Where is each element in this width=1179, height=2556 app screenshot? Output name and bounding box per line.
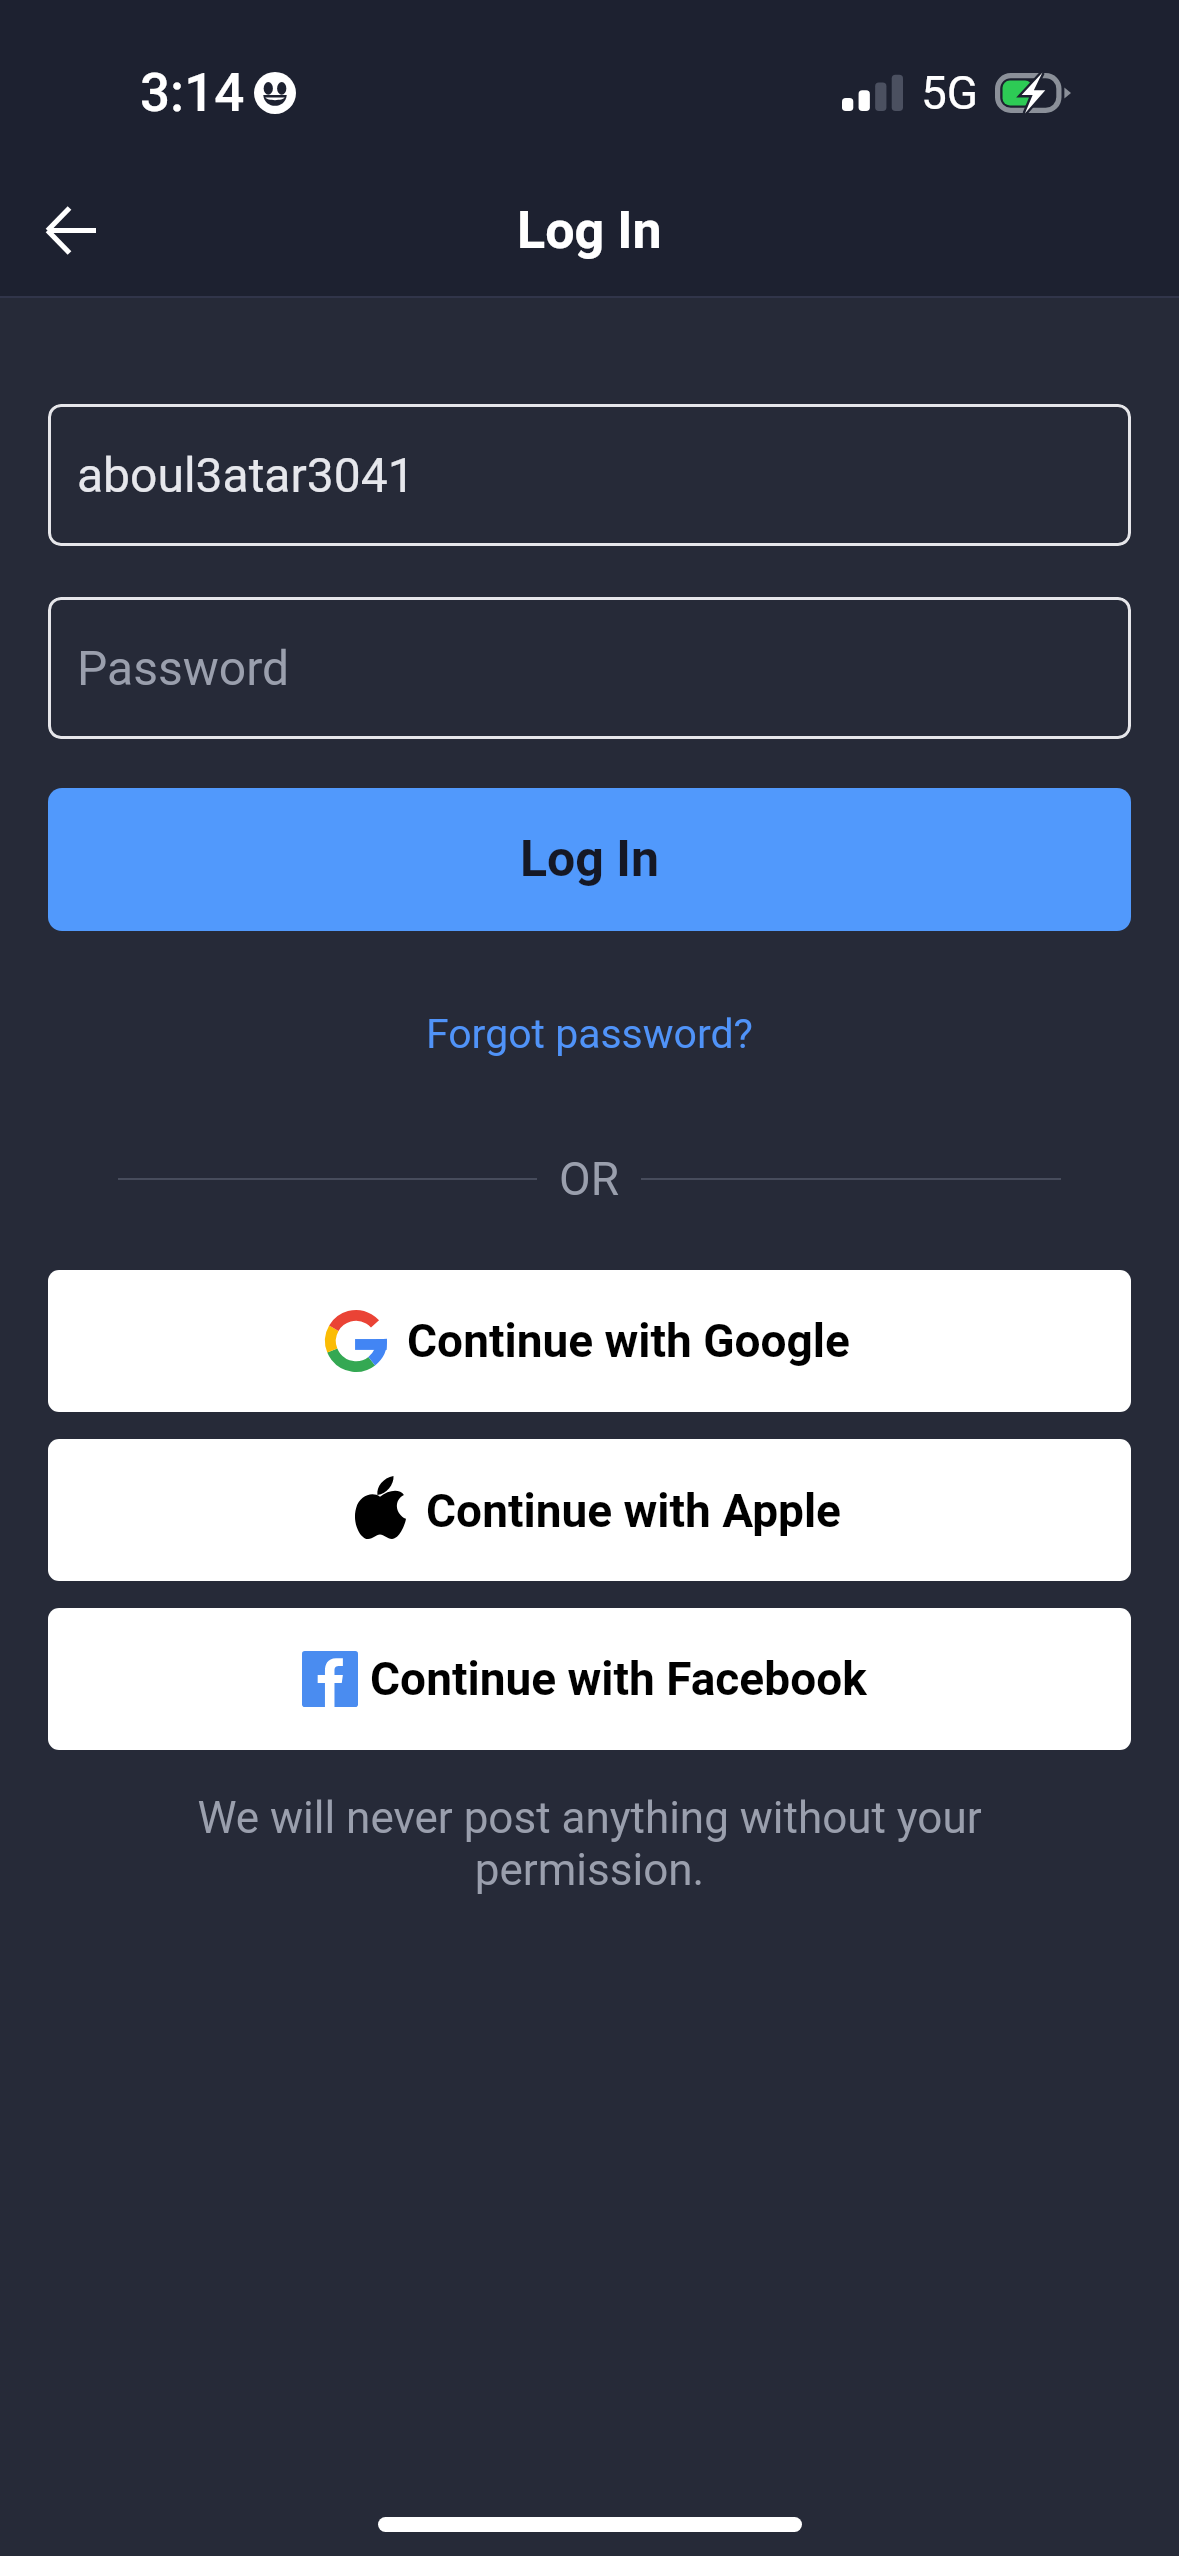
button[interactable]: Password — [48, 597, 1131, 739]
button[interactable]: Continue with Google — [48, 1270, 1131, 1412]
staticText: Log In — [517, 200, 662, 261]
button[interactable]: Log In — [48, 788, 1131, 931]
staticText: aboul3atar3041 — [77, 447, 415, 503]
staticText: We will never post anything without your… — [186, 1792, 993, 1896]
staticText: Continue with Apple — [426, 1484, 841, 1538]
staticText: Password — [77, 640, 290, 696]
staticText: Continue with Facebook — [370, 1652, 867, 1706]
button[interactable]: Forgot password? — [400, 996, 779, 1072]
staticText: 3:14 — [140, 62, 245, 124]
staticText: 5G — [921, 66, 979, 120]
button[interactable]: aboul3atar3041 — [48, 404, 1131, 546]
staticText: Log In — [520, 830, 659, 889]
button[interactable]: Continue with Apple — [48, 1439, 1131, 1581]
staticText: Forgot password? — [426, 1010, 753, 1058]
staticText: Continue with Google — [407, 1314, 850, 1368]
button[interactable]: Back — [24, 183, 118, 277]
button[interactable]: Continue with Facebook — [48, 1608, 1131, 1750]
staticText: OR — [559, 1152, 619, 1206]
